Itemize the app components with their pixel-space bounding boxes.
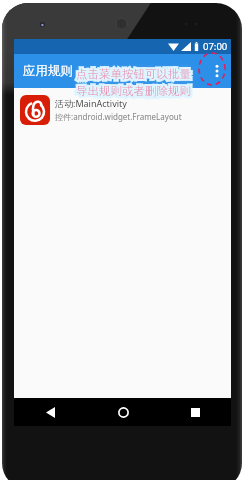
button[interactable]: 活动:MainActivity	[14, 88, 231, 131]
staticText: 控件:android.widget.FrameLayout	[55, 111, 182, 122]
staticText: 点击菜单按钮可以批量	[76, 67, 191, 81]
staticText: 活动:MainActivity	[55, 97, 127, 109]
staticText: 导出规则或者删除规则	[76, 84, 191, 98]
staticText: 导出规则或者删除规则	[76, 84, 191, 98]
staticText: 点击菜单按钮可以批量	[76, 67, 191, 81]
staticText: 应用规则	[23, 63, 73, 79]
staticText: 点击菜单按钮可以批量	[76, 67, 191, 81]
button[interactable]: More options	[203, 57, 231, 85]
button[interactable]: Home	[87, 398, 159, 426]
button[interactable]: Back	[14, 398, 87, 426]
button[interactable]: Recents	[159, 398, 231, 426]
staticText: 07:00	[203, 40, 228, 53]
staticText: 导出规则或者删除规则	[76, 84, 191, 98]
